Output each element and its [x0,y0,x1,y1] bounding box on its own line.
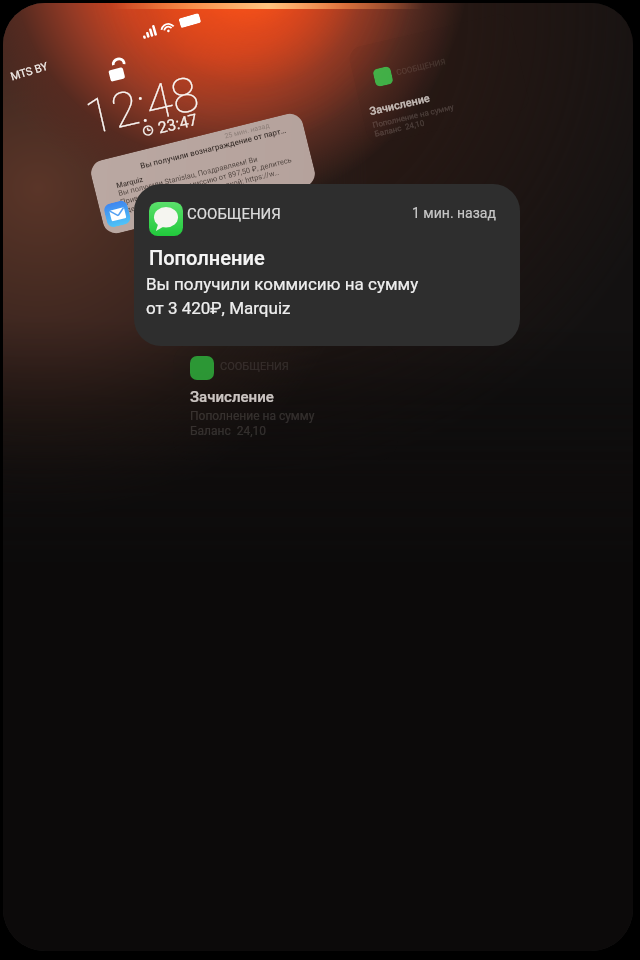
staticText: Пополнение на сумму [372,102,455,130]
button[interactable]: СООБЩЕНИЯ [134,184,520,346]
staticText: Вы получили коммисию на сумму от 3 420₽,… [146,274,419,318]
staticText: Зачисление [368,92,431,118]
staticText: Marquiz [115,175,145,190]
staticText: 12:48 [80,65,204,145]
staticText: 23:47 [156,110,199,137]
staticText: СООБЩЕНИЯ [187,205,281,223]
staticText: Баланс 24,10 [190,424,267,438]
staticText: Баланс 24,10 [374,118,425,139]
staticText: СООБЩЕНИЯ [395,57,447,77]
staticText: Пополнение на сумму [190,409,315,423]
staticText: MTS BY [9,60,50,83]
staticText: Пополнение [149,246,265,269]
staticText: Зачисление [190,388,274,406]
staticText: СООБЩЕНИЯ [220,360,289,373]
staticText: Вы получили Stanislau, Поздравляем! Ви П… [117,146,296,215]
staticText: Вы получили вознаграждение от парт… [139,125,288,171]
staticText: 1 мин. назад [412,205,496,221]
staticText: 25 мин. назад [224,122,270,140]
